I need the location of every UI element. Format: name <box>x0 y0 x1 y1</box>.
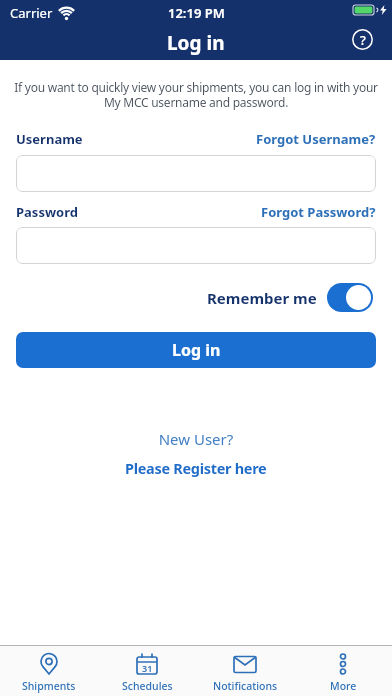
staticText: More <box>330 679 357 693</box>
button[interactable]: Shipments <box>0 646 98 696</box>
button[interactable]: More <box>294 646 392 696</box>
button[interactable]: Please Register here <box>125 458 267 478</box>
button[interactable]: Forgot Username? <box>256 130 376 148</box>
button[interactable]: Forgot Password? <box>261 203 376 221</box>
staticText: Carrier <box>10 4 53 22</box>
button[interactable]: 31 <box>98 646 196 696</box>
staticText: Log in <box>172 339 221 361</box>
button[interactable]: Log in <box>16 332 376 368</box>
button[interactable] <box>327 283 373 312</box>
staticText: Username <box>16 130 83 148</box>
staticText: If you want to quickly view your shipmen… <box>0 79 392 110</box>
staticText: Notifications <box>213 679 278 693</box>
staticText: Remember me <box>207 288 317 308</box>
staticText: Forgot Password? <box>261 203 376 221</box>
staticText: Password <box>16 203 78 221</box>
staticText: Please Register here <box>125 458 267 478</box>
staticText: New User? <box>0 429 392 449</box>
staticText: ? <box>360 31 366 49</box>
staticText: 31 <box>142 662 153 674</box>
staticText: 12:19 PM <box>168 4 225 22</box>
button[interactable] <box>16 227 376 264</box>
staticText: Forgot Username? <box>256 130 376 148</box>
button[interactable]: Notifications <box>196 646 294 696</box>
button[interactable]: ? <box>352 29 373 50</box>
staticText: Schedules <box>122 679 173 693</box>
staticText: Shipments <box>22 679 76 693</box>
staticText: Log in <box>167 30 225 56</box>
button[interactable] <box>16 155 376 192</box>
